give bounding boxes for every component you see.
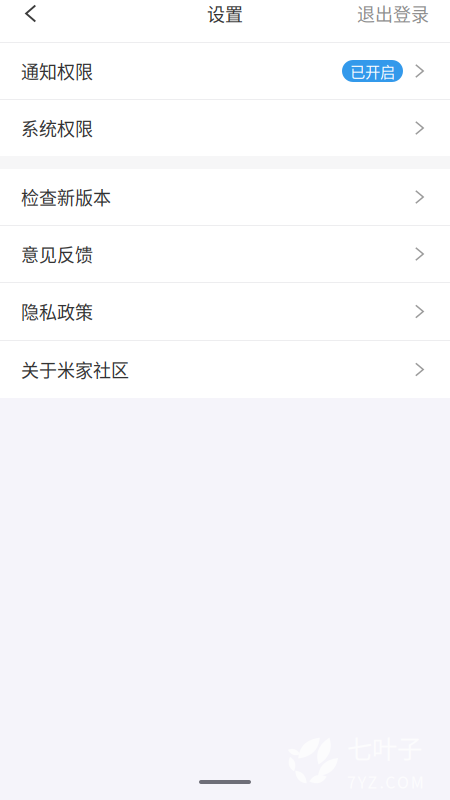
staticText: 设置	[207, 0, 243, 27]
button[interactable]: 关于米家社区	[0, 341, 450, 398]
button[interactable]: 通知权限	[0, 43, 450, 100]
staticText: 系统权限	[21, 115, 93, 141]
button[interactable]: 退出登录	[334, 0, 450, 27]
staticText: 意见反馈	[21, 241, 93, 267]
button[interactable]: 系统权限	[0, 100, 450, 156]
button[interactable]: 检查新版本	[0, 169, 450, 226]
button[interactable]: 意见反馈	[0, 226, 450, 283]
staticText: 检查新版本	[21, 184, 111, 210]
staticText: 通知权限	[21, 58, 93, 84]
button[interactable]: 隐私政策	[0, 283, 450, 341]
button[interactable]: 返回	[0, 0, 50, 27]
staticText: 已开启	[350, 60, 395, 82]
staticText: 退出登录	[357, 0, 429, 27]
staticText: 关于米家社区	[21, 356, 129, 383]
staticText: 隐私政策	[21, 298, 93, 325]
